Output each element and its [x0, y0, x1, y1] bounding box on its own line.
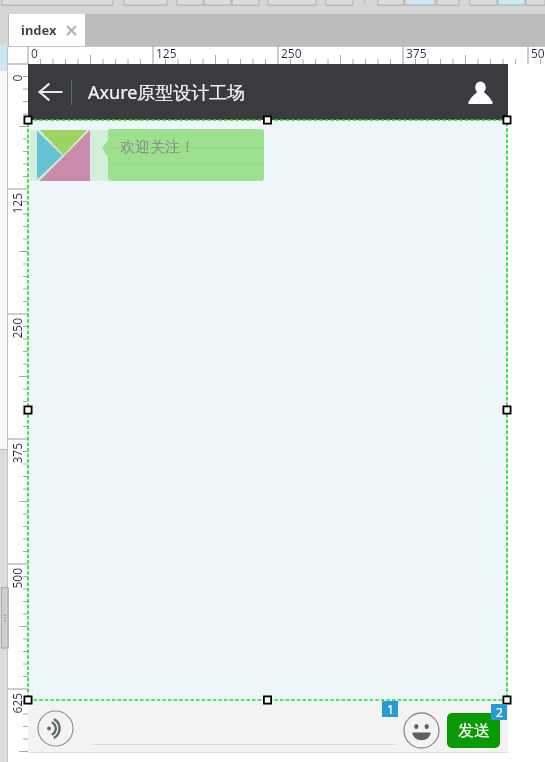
staticText: 0 [8, 74, 24, 81]
button[interactable]: Profile [452, 64, 508, 120]
staticText: 500 [531, 45, 545, 61]
button[interactable]: Emoji [403, 712, 440, 749]
staticText: Axure原型设计工场 [88, 80, 246, 105]
staticText: 1 [387, 701, 394, 717]
button[interactable]: 发送 [447, 713, 500, 748]
other: Close tab [66, 25, 77, 36]
staticText: 250 [8, 317, 24, 338]
staticText: 500 [8, 567, 24, 588]
staticText: 0 [31, 45, 38, 61]
staticText: index [21, 21, 57, 39]
button[interactable]: Voice message [37, 710, 74, 747]
staticText: 625 [8, 692, 24, 713]
staticText: 375 [406, 45, 427, 61]
button[interactable]: Back [28, 64, 71, 120]
staticText: 125 [156, 45, 177, 61]
staticText: 250 [281, 45, 302, 61]
staticText: 欢迎关注！ [120, 138, 195, 157]
staticText: 2 [496, 704, 503, 720]
staticText: 375 [8, 442, 24, 463]
button[interactable]: index [9, 14, 85, 46]
staticText: 125 [8, 192, 24, 213]
staticText: 发送 [458, 721, 490, 741]
